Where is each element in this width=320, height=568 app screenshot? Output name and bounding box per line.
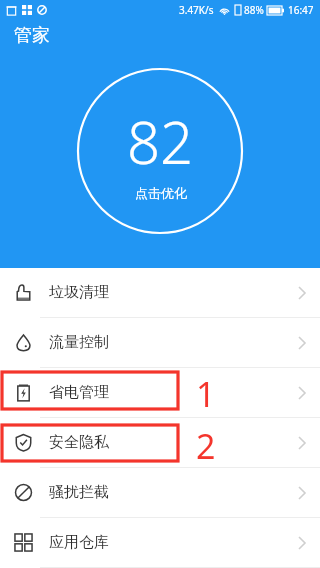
button[interactable]: 安全隐私 — [0, 418, 320, 467]
button[interactable]: 82 — [77, 68, 243, 234]
staticText: 管家 — [14, 24, 50, 47]
staticText: 88% — [244, 3, 264, 17]
button[interactable]: 骚扰拦截 — [0, 468, 320, 517]
staticText: 16:47 — [288, 3, 314, 17]
staticText: 骚扰拦截 — [49, 483, 109, 502]
staticText: 82 — [127, 102, 194, 181]
button[interactable]: 垃圾清理 — [0, 268, 320, 317]
staticText: 流量控制 — [49, 333, 109, 352]
button[interactable]: 省电管理 — [0, 368, 320, 417]
staticText: 省电管理 — [49, 383, 109, 402]
staticText: 2 — [196, 423, 216, 469]
staticText: 安全隐私 — [49, 433, 109, 452]
staticText: 应用仓库 — [49, 533, 109, 552]
staticText: 1 — [196, 371, 216, 417]
button[interactable]: 流量控制 — [0, 318, 320, 367]
staticText: 3.47K/s — [179, 3, 214, 17]
staticText: 点击优化 — [135, 185, 187, 201]
staticText: 垃圾清理 — [49, 283, 109, 302]
button[interactable]: 应用仓库 — [0, 518, 320, 567]
